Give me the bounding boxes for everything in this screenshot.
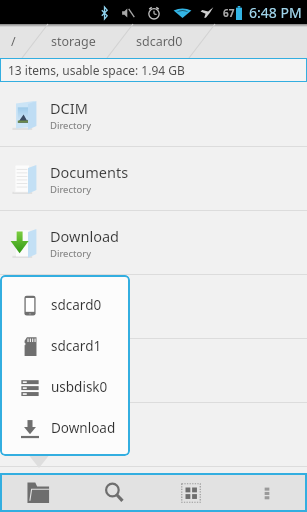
button[interactable]: sdcard0: [0, 284, 130, 325]
staticText: Download: [51, 419, 116, 437]
button[interactable]: [0, 275, 307, 338]
button[interactable]: Download: [0, 407, 130, 448]
staticText: Directory: [50, 183, 91, 196]
staticText: 67: [223, 6, 235, 20]
staticText: /: [11, 33, 16, 50]
button[interactable]: /: [0, 24, 26, 58]
button[interactable]: sdcard0: [120, 24, 198, 58]
staticText: Directory: [50, 247, 91, 260]
button[interactable]: Files: [7, 475, 77, 510]
staticText: storage: [51, 33, 96, 50]
staticText: sdcard0: [51, 296, 102, 314]
button[interactable]: Documents: [0, 147, 307, 210]
staticText: sdcard1: [51, 337, 102, 355]
staticText: Directory: [50, 119, 91, 132]
button[interactable]: sdcard1: [0, 325, 130, 366]
staticText: DCIM: [50, 98, 88, 118]
button[interactable]: DCIM: [0, 83, 307, 146]
staticText: usbdisk0: [51, 378, 108, 396]
button[interactable]: usbdisk0: [0, 366, 130, 407]
button[interactable]: [0, 339, 307, 402]
button[interactable]: View mode: [156, 475, 226, 510]
staticText: Download: [50, 226, 119, 246]
button[interactable]: Search: [81, 475, 151, 510]
staticText: 13 items, usable space: 1.94 GB: [8, 62, 185, 78]
button[interactable]: Download: [0, 211, 307, 274]
staticText: sdcard0: [136, 33, 183, 50]
staticText: Documents: [50, 162, 129, 182]
staticText: 6:48 PM: [249, 3, 302, 22]
button[interactable]: [0, 403, 307, 466]
button[interactable]: storage: [26, 24, 120, 58]
button[interactable]: More options: [230, 475, 300, 510]
